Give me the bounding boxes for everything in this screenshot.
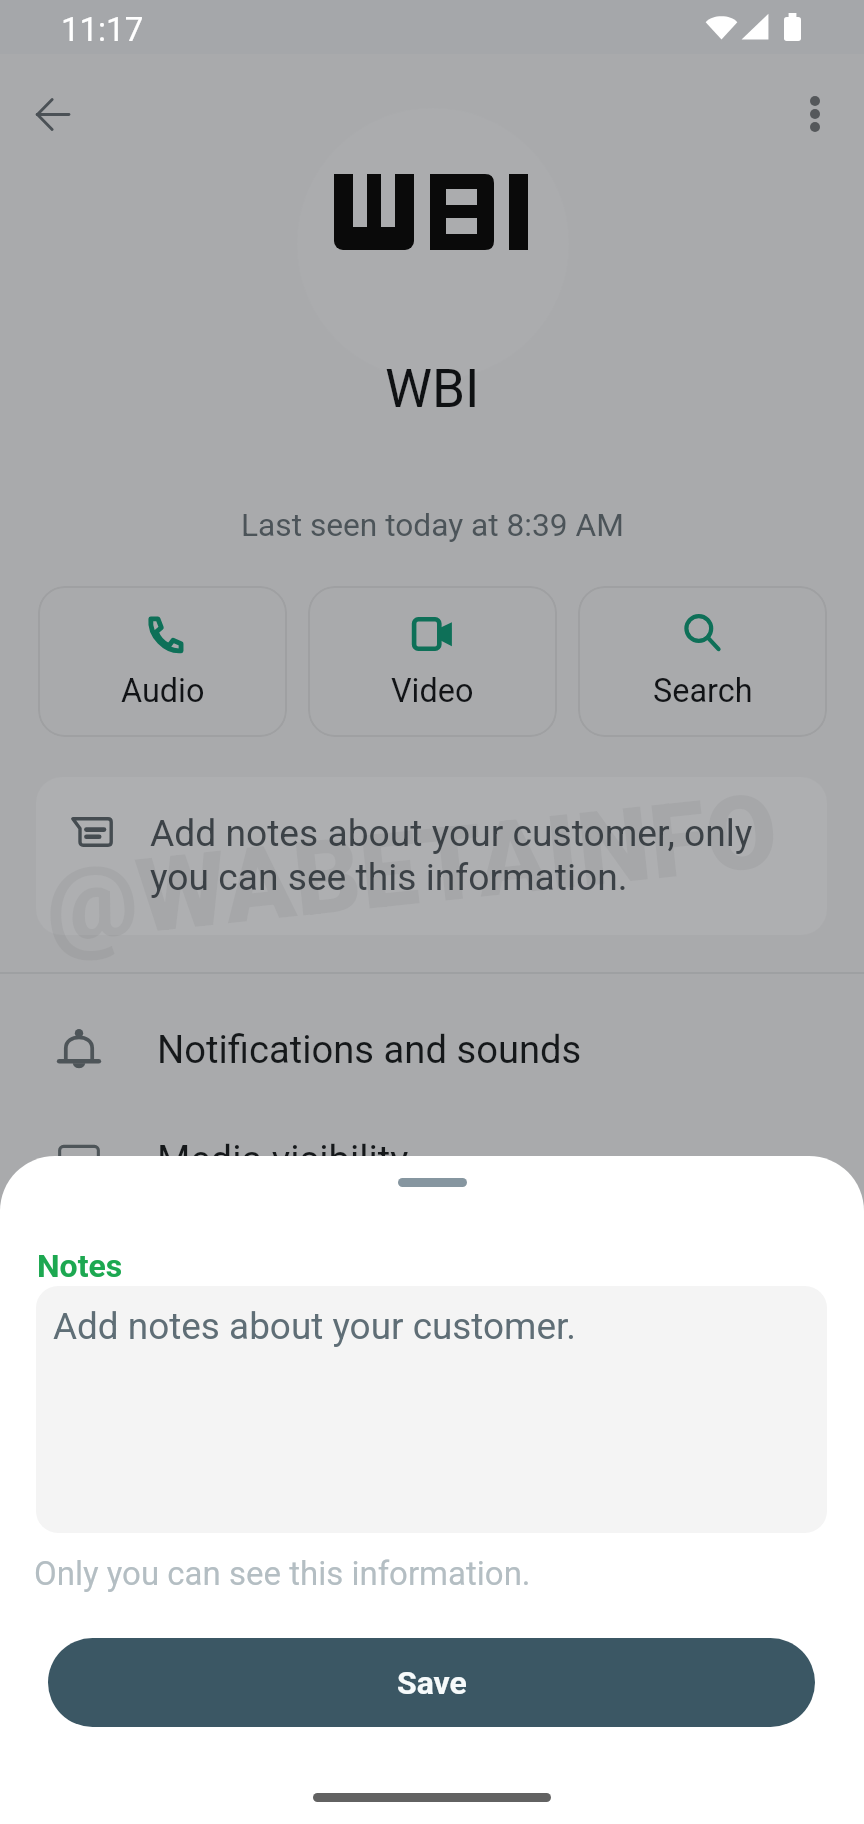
button[interactable]: Add notes about your customer, only you … — [36, 777, 827, 935]
staticText: Video — [391, 672, 474, 710]
button[interactable]: Back — [14, 76, 90, 152]
staticText: Media visibility — [157, 1138, 409, 1183]
staticText: WBI — [385, 358, 480, 420]
button[interactable]: Video — [308, 586, 557, 737]
staticText: Audio — [121, 672, 205, 710]
button[interactable]: Audio — [38, 586, 287, 737]
staticText: Notifications and sounds — [157, 1028, 582, 1073]
staticText: Only you can see this information. — [34, 1554, 531, 1593]
staticText: Save — [397, 1664, 467, 1702]
button[interactable]: Save — [48, 1638, 815, 1727]
staticText: Add notes about your customer. — [53, 1305, 577, 1348]
button[interactable]: Notifications and sounds — [0, 995, 864, 1105]
button[interactable]: More options — [777, 76, 853, 152]
button[interactable]: Media visibility — [0, 1105, 864, 1215]
staticText: Search — [653, 672, 753, 710]
staticText: @WABETAINFO — [39, 770, 783, 967]
button[interactable]: Add notes about your customer. — [36, 1286, 827, 1533]
staticText: 11:17 — [61, 10, 144, 49]
button[interactable]: Search — [578, 586, 827, 737]
staticText: Add notes about your customer, only you … — [150, 811, 803, 899]
staticText: Notes — [37, 1247, 123, 1285]
staticText: @WABETAINFO — [50, 1300, 643, 1457]
staticText: Last seen today at 8:39 AM — [241, 507, 624, 544]
